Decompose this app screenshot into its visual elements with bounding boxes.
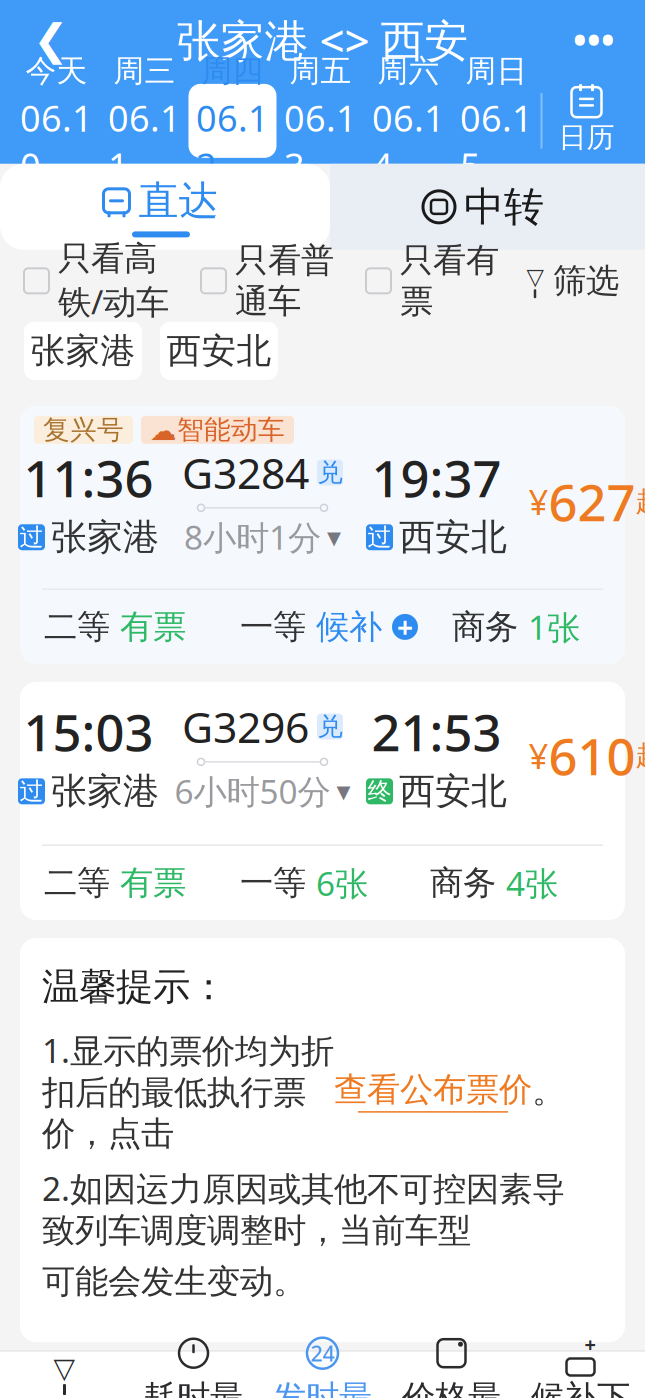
staticText: 西安北 [399,769,507,813]
staticText: 周五 [289,52,351,90]
staticText: 只看高铁/动车 [58,238,169,323]
staticText: 周日 [465,52,527,90]
staticText: 过 [19,777,43,806]
staticText: ▾ [327,521,341,553]
staticText: ❮ [33,16,69,64]
staticText: 兑 [317,457,342,488]
button[interactable]: 耗时最短 [129,1352,258,1398]
staticText: 06.15 [460,94,533,189]
staticText: 06.12 [196,94,269,189]
button[interactable]: 今天 [12,84,100,158]
staticText: 1.显示的票价均为折扣后的最低执行票价，点击 [42,1028,334,1154]
button[interactable]: 更多 [555,5,633,75]
staticText: 发时最早 [273,1377,372,1398]
staticText: 中转 [464,182,544,231]
button[interactable]: 返回 [12,5,90,75]
staticText: 610 [548,722,635,789]
staticText: 有票 [120,606,186,647]
staticText: 周六 [377,52,439,90]
staticText: 张家港 [30,330,135,372]
button[interactable]: 价格最低 [387,1352,516,1398]
staticText: 复兴号 [43,413,124,446]
staticText: 查看公布票价 [334,1069,532,1110]
button[interactable]: 查看公布票价 [334,1069,532,1113]
staticText: ▽ [526,263,543,289]
staticText: 起 [635,484,645,519]
staticText: 只看有票 [400,240,499,322]
staticText: ••• [573,16,615,64]
staticText: 二等 [44,606,110,647]
button[interactable]: 24 [258,1352,387,1398]
staticText: 西安北 [399,515,507,559]
button[interactable]: 周五 [276,84,364,158]
staticText: 19:37 [371,444,501,511]
staticText: 有票 [120,862,186,903]
staticText: 06.11 [108,94,181,189]
staticText: 价格最低 [402,1377,501,1398]
staticText: ¥ [528,733,548,779]
staticText: 一等 [240,862,306,903]
button[interactable]: + [516,1352,645,1398]
button[interactable]: 复兴号 [20,406,625,664]
staticText: 只看普通车 [235,240,334,322]
staticText: 张家港 [51,769,159,813]
staticText: 西安北 [166,330,271,372]
staticText: 可能会发生变动。 [42,1261,306,1302]
button[interactable]: 周四 [188,84,276,158]
staticText: 6张 [316,861,368,905]
staticText: 24 [310,1339,334,1367]
staticText: 。 [532,1070,565,1111]
staticText: 二等 [44,862,110,903]
staticText: 直达 [138,176,218,225]
button[interactable]: 周三 [100,84,188,158]
button[interactable]: 周日 [452,84,540,158]
button[interactable]: 只看高铁/动车 [24,238,169,323]
button[interactable]: 中转 [322,164,645,250]
staticText: 今天 [25,52,87,90]
staticText: 06.10 [20,94,93,189]
staticText: 4张 [506,861,558,905]
staticText: 一等 [240,606,306,647]
staticText: 1张 [528,605,580,649]
button[interactable]: 只看有票 [366,240,499,322]
staticText: ¥ [528,479,548,525]
staticText: G3296 [182,698,309,755]
staticText: G3284 [182,444,309,501]
staticText: 商务 [452,606,518,647]
staticText: 06.14 [372,94,445,189]
button[interactable]: ▽ [0,1352,129,1398]
staticText: 周四 [201,52,263,90]
staticText: 兑 [317,711,342,742]
staticText: 周三 [113,52,175,90]
staticText: ▾ [336,775,350,807]
staticText: 2.如因运力原因或其他不可控因素导致列车调度调整时，当前车型 [42,1166,565,1251]
staticText: + [584,1331,595,1357]
staticText: 筛选 [553,260,619,301]
staticText: 张家港 [51,515,159,559]
button[interactable]: 直达 [0,164,322,250]
button[interactable]: 只看普通车 [201,240,334,322]
staticText: 终 [367,777,391,806]
button[interactable]: 西安北 [160,322,278,380]
button[interactable]: 日历 [540,84,632,158]
staticText: 起 [635,738,645,773]
staticText: 日历 [558,120,614,155]
staticText: 8小时1分 [184,515,321,559]
staticText: ▽ [53,1352,75,1384]
staticText: ☁智能动车 [150,413,285,446]
staticText: 张家港 <> 西安 [176,11,468,69]
button[interactable]: 15:03 [20,682,625,920]
staticText: + [397,608,413,645]
staticText: 温馨提示： [42,964,227,1010]
staticText: 商务 [430,862,496,903]
staticText: 过 [367,522,391,552]
staticText: 21:53 [371,698,501,765]
staticText: 6小时50分 [174,769,330,813]
staticText: 过 [19,522,43,552]
staticText: 11:36 [23,444,153,511]
staticText: 15:03 [23,698,153,765]
button[interactable]: 周六 [364,84,452,158]
staticText: 627 [548,468,635,535]
button[interactable]: 张家港 [24,322,142,380]
button[interactable]: ▽ [524,260,619,301]
